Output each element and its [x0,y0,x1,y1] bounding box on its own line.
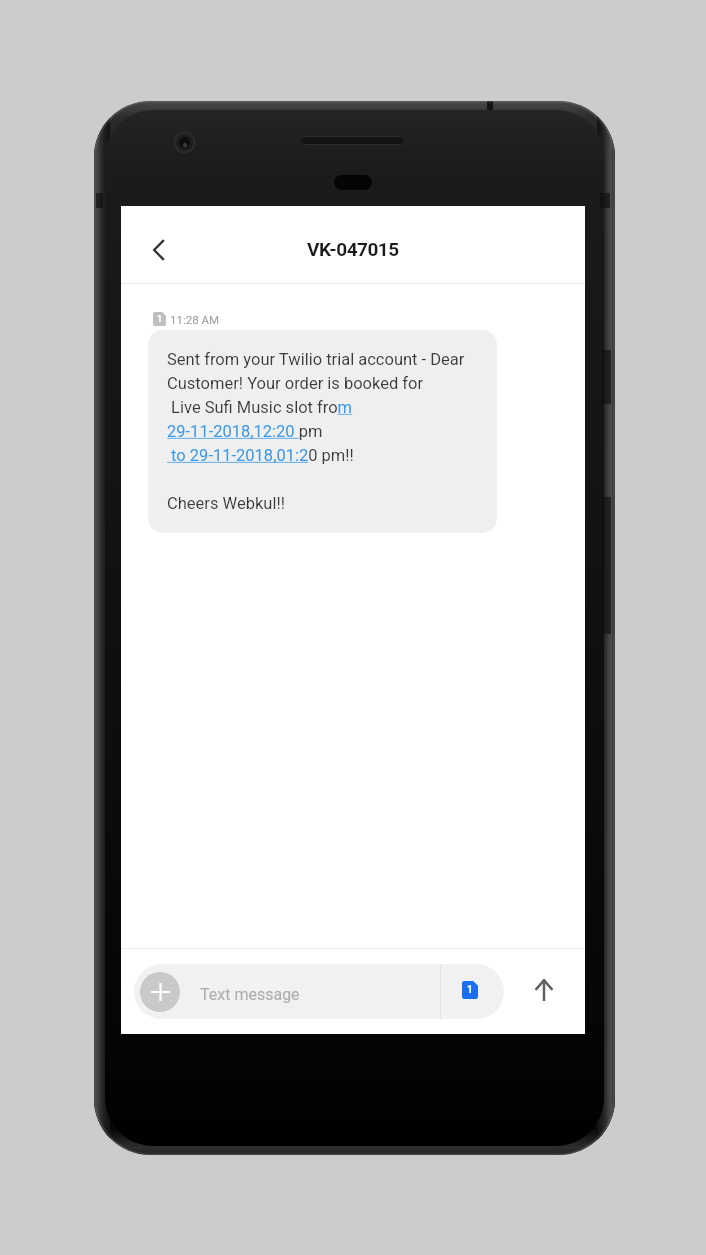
button[interactable]: Back [135,226,183,274]
button[interactable]: Select SIM [439,962,501,1017]
button[interactable]: Sent from your Twilio trial account - De… [148,330,497,533]
button[interactable]: Add attachment [140,972,180,1012]
button[interactable]: Send [519,965,568,1014]
staticText: Text message [200,985,300,1004]
staticText: 1 [467,984,473,996]
staticText: 11:28 AM [170,313,220,326]
staticText: VK-047015 [307,238,399,260]
button[interactable]: Text message [134,964,504,1019]
staticText: 1 [157,314,163,325]
staticText: Sent from your Twilio trial account - De… [167,350,483,513]
